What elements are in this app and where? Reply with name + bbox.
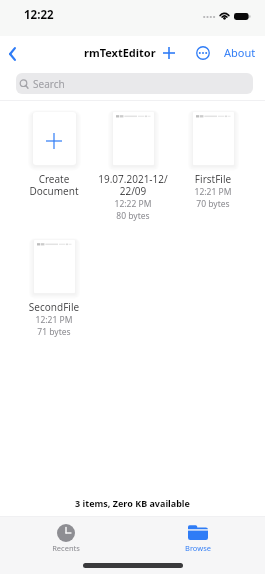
staticText: 12:22 PM	[93, 198, 173, 210]
staticText: 12:21 PM	[173, 186, 253, 198]
staticText: 70 bytes	[173, 198, 253, 210]
button[interactable]: About	[224, 39, 256, 65]
button[interactable]: FirstFile	[173, 104, 253, 220]
staticText: Browse	[168, 543, 228, 553]
staticText: 3 items, Zero KB available	[0, 497, 265, 509]
button[interactable]: SecondFile	[14, 232, 94, 348]
button[interactable]: Recents	[36, 524, 96, 564]
staticText: 12:22	[24, 7, 54, 23]
button[interactable]: 19.07.2021-12/ 22/09	[93, 104, 173, 220]
button[interactable]: New document	[158, 42, 180, 64]
staticText: rmTextEditor	[84, 45, 156, 60]
staticText: Search	[33, 77, 65, 91]
button[interactable]: Search	[16, 73, 253, 94]
staticText: FirstFile	[173, 172, 253, 186]
staticText: 19.07.2021-12/ 22/09	[93, 172, 173, 198]
staticText: Recents	[36, 543, 96, 553]
staticText: 12:21 PM	[14, 314, 94, 326]
staticText: 71 bytes	[14, 326, 94, 338]
staticText: 80 bytes	[93, 210, 173, 222]
staticText: About	[224, 45, 256, 60]
button[interactable]: More options	[192, 42, 214, 64]
staticText: Create Document	[14, 172, 94, 198]
button[interactable]: Create Document	[14, 104, 94, 200]
button[interactable]: Browse	[168, 524, 228, 564]
button[interactable]: Back	[0, 41, 25, 66]
staticText: SecondFile	[14, 300, 94, 314]
